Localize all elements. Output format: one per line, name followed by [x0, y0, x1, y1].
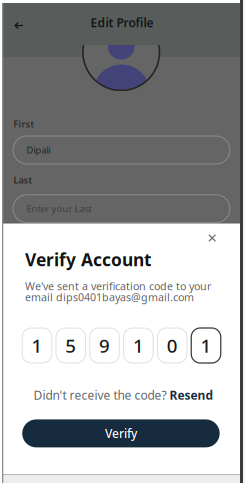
staticText: Verify Account: [25, 248, 152, 271]
staticText: Verify: [105, 425, 137, 441]
button[interactable]: 1: [124, 328, 153, 363]
staticText: 0: [167, 333, 178, 358]
staticText: Last: [14, 174, 33, 186]
staticText: Dipali: [26, 144, 50, 156]
staticText: Enter your Last: [26, 202, 91, 215]
staticText: Edit Profile: [90, 14, 153, 30]
staticText: Didn't receive the code?: [33, 387, 169, 403]
staticText: 9: [99, 333, 110, 358]
button[interactable]: Close: [201, 227, 223, 249]
staticText: Resend: [169, 387, 213, 403]
button[interactable]: 9: [90, 328, 119, 363]
button[interactable]: Back: [6, 12, 32, 38]
staticText: 1: [200, 333, 211, 358]
staticText: We've sent a verification code to your: [25, 279, 211, 293]
button[interactable]: 1: [191, 328, 221, 363]
button[interactable]: Resend: [169, 387, 213, 403]
staticText: First: [14, 118, 35, 130]
staticText: 1: [133, 333, 144, 358]
button[interactable]: 1: [22, 328, 52, 363]
staticText: email dips0401bayas@gmail.com: [25, 290, 194, 304]
staticText: 1: [31, 333, 42, 358]
button[interactable]: Verify: [22, 419, 220, 447]
staticText: 5: [65, 333, 76, 358]
button[interactable]: 5: [56, 328, 85, 363]
button[interactable]: 0: [157, 328, 187, 363]
